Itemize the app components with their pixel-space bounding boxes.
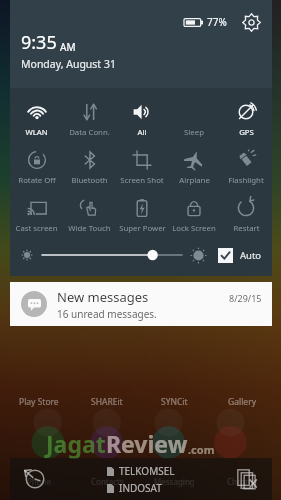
button[interactable]: Rotate Off xyxy=(10,143,63,191)
staticText: Bluetooth xyxy=(71,175,108,186)
staticText: Auto xyxy=(240,249,262,262)
staticText: AM xyxy=(60,40,76,54)
staticText: SYNCit xyxy=(161,396,188,408)
staticText: Play Store xyxy=(19,396,59,408)
button[interactable]: Bluetooth xyxy=(63,143,116,191)
button[interactable]: Brightness xyxy=(42,242,182,268)
staticText: Cast screen xyxy=(15,223,58,234)
staticText: GPS xyxy=(239,127,254,138)
staticText: Restart xyxy=(233,223,260,234)
button[interactable]: New messages xyxy=(10,282,272,326)
staticText: 77% xyxy=(207,15,227,29)
button[interactable]: Restart xyxy=(220,191,272,239)
button[interactable]: Settings xyxy=(238,9,264,35)
button[interactable]: GPS xyxy=(220,95,272,143)
staticText: Phone xyxy=(27,476,52,487)
staticText: Rotate Off xyxy=(18,175,56,186)
staticText: New messages xyxy=(57,288,149,306)
staticText: Data Conn. xyxy=(69,127,110,138)
button[interactable]: Sleep xyxy=(168,95,220,143)
staticText: WLAN xyxy=(25,127,48,138)
staticText: SHAREit xyxy=(91,396,123,408)
button[interactable]: WLAN xyxy=(10,95,63,143)
staticText: Flashlight xyxy=(228,175,264,186)
staticText: Sleep xyxy=(184,127,204,138)
staticText: Review xyxy=(106,428,188,459)
staticText: Jagat xyxy=(46,428,106,459)
staticText: Chrome xyxy=(227,476,257,487)
button[interactable]: Lock Screen xyxy=(168,191,220,239)
button[interactable]: Flashlight xyxy=(220,143,272,191)
staticText: Contacts xyxy=(91,476,124,487)
button[interactable]: Airplane xyxy=(168,143,220,191)
button[interactable]: Super Power xyxy=(116,191,168,239)
staticText: Lock Screen xyxy=(172,223,216,234)
button[interactable]: Auto xyxy=(218,248,262,263)
staticText: Messaging xyxy=(154,476,195,487)
button[interactable]: 9:35 xyxy=(21,30,116,71)
staticText: 8/29/15 xyxy=(229,292,262,304)
button[interactable]: All xyxy=(116,95,168,143)
staticText: All xyxy=(137,127,147,138)
button[interactable]: Rotate xyxy=(20,464,50,494)
staticText: Gallery xyxy=(228,396,256,408)
staticText: INDOSAT xyxy=(119,481,162,495)
staticText: Airplane xyxy=(179,175,210,186)
staticText: 9:35 xyxy=(21,30,57,55)
button[interactable]: Screen Shot xyxy=(116,143,168,191)
staticText: Screen Shot xyxy=(120,175,164,186)
staticText: Super Power xyxy=(119,223,166,234)
button[interactable]: Clear all notifications xyxy=(232,464,262,494)
staticText: 16 unread messages. xyxy=(57,307,157,321)
button[interactable]: Cast screen xyxy=(10,191,63,239)
staticText: Wide Touch xyxy=(68,223,111,234)
staticText: .com xyxy=(188,442,215,457)
staticText: TELKOMSEL xyxy=(119,464,175,478)
button[interactable]: Data Conn. xyxy=(63,95,116,143)
button[interactable]: Wide Touch xyxy=(63,191,116,239)
staticText: Monday, August 31 xyxy=(21,57,116,71)
